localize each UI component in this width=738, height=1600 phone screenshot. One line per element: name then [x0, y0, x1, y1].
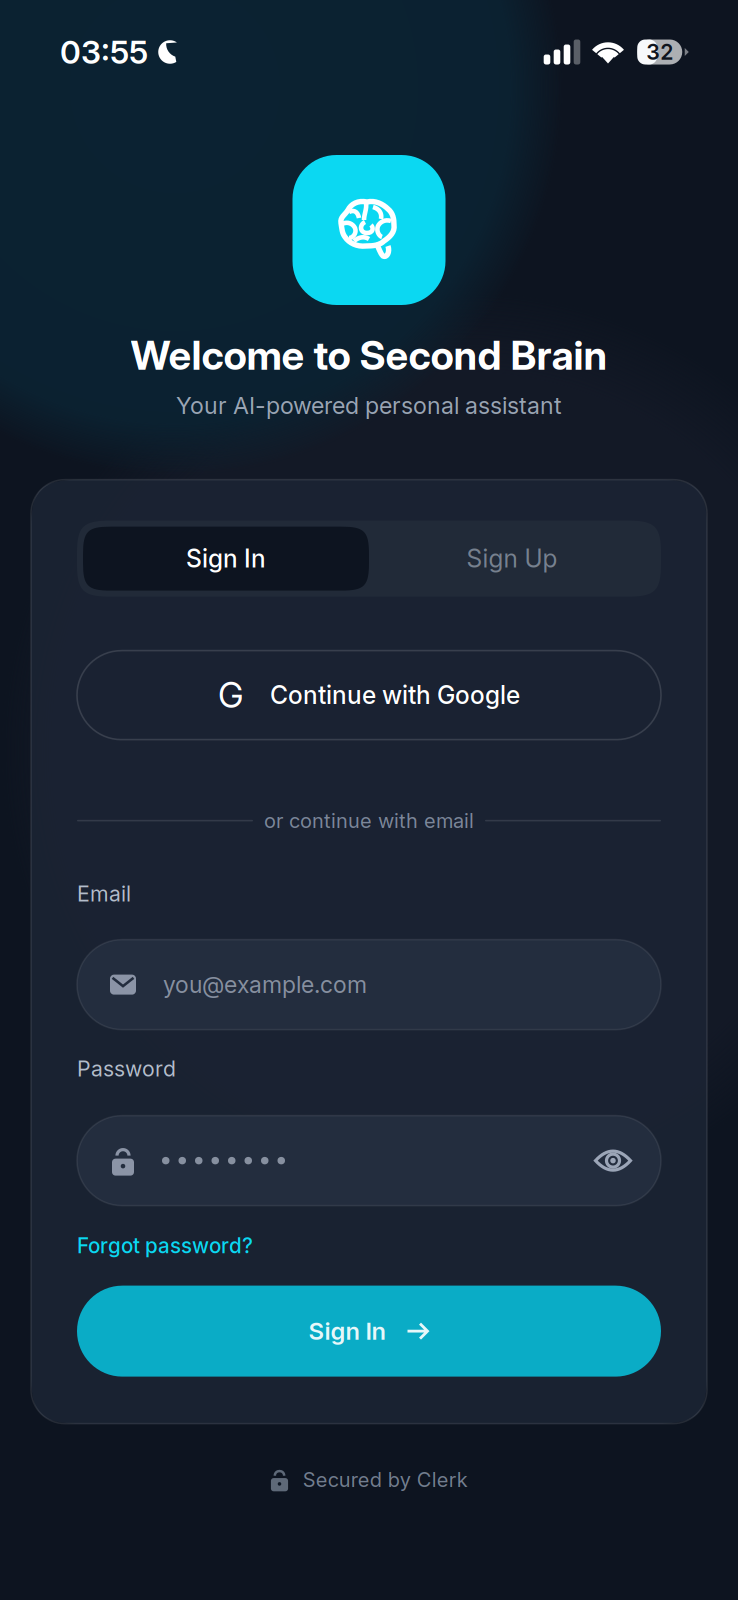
button[interactable]: Sign In	[77, 1286, 661, 1377]
button[interactable]: Sign Up	[369, 527, 655, 591]
staticText: Email	[77, 881, 131, 906]
staticText: Sign In	[308, 1317, 385, 1346]
staticText: Sign In	[186, 544, 266, 573]
button[interactable]: Show password	[581, 1129, 645, 1193]
button[interactable]: G	[77, 651, 661, 740]
staticText: Your AI-powered personal assistant	[176, 391, 562, 420]
staticText: 32	[646, 39, 673, 65]
staticText: Secured by Clerk	[303, 1467, 468, 1492]
button[interactable]: Sign In	[83, 527, 369, 591]
staticText: G	[218, 674, 244, 716]
staticText: you@example.com	[163, 971, 367, 999]
staticText: 03:55	[60, 33, 148, 71]
staticText: Password	[77, 1056, 176, 1081]
staticText: Sign Up	[466, 544, 557, 573]
staticText: Welcome to Second Brain	[130, 331, 607, 379]
staticText: Continue with Google	[270, 680, 520, 710]
button[interactable]: Forgot password?	[77, 1233, 661, 1259]
staticText: Forgot password?	[77, 1233, 253, 1258]
staticText: or continue with email	[264, 808, 474, 833]
